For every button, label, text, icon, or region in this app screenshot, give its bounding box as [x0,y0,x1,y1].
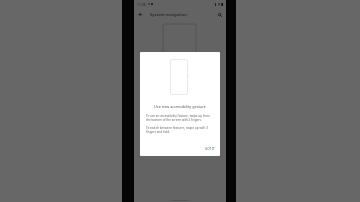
button[interactable]: GOT IT [202,145,218,153]
staticText: Use new accessibility gesture [143,104,217,109]
button[interactable]: Back [134,8,146,21]
staticText: To switch between features, swipe up wit… [146,126,211,134]
staticText: To use an accessibility feature, swipe u… [146,114,211,122]
button[interactable]: Search [213,8,226,21]
staticText: GOT IT [205,147,215,151]
staticText: 11:36 [137,2,146,7]
staticText: System navigation [150,12,187,18]
